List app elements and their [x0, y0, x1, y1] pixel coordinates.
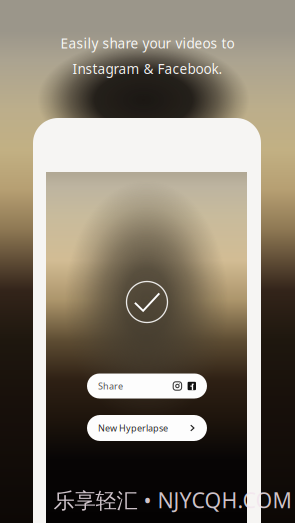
- button[interactable]: New Hyperlapse: [87, 415, 207, 441]
- staticText: Easily share your videos to: [60, 34, 234, 52]
- staticText: Instagram & Facebook.: [72, 59, 222, 78]
- staticText: Share: [98, 380, 123, 392]
- staticText: 乐享轻汇 • NJYCQH.COM: [53, 485, 291, 515]
- button[interactable]: Share: [87, 373, 207, 398]
- staticText: New Hyperlapse: [98, 422, 168, 434]
